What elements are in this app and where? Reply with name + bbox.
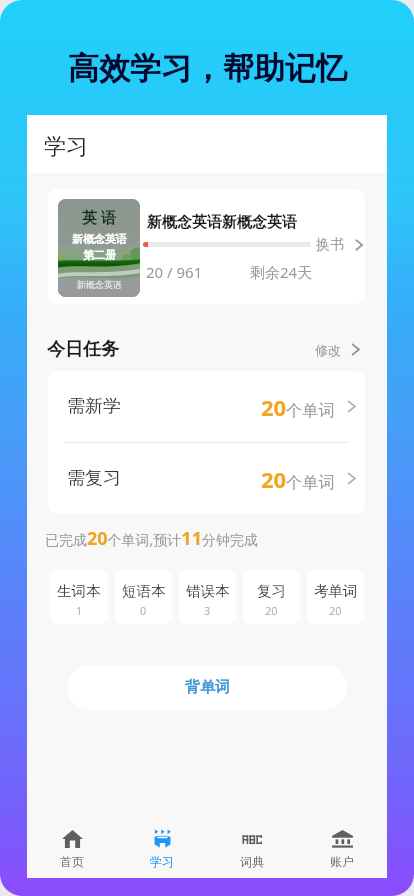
button[interactable]: 修改 <box>315 341 364 358</box>
staticText: 新概念英语 <box>77 279 122 290</box>
staticText: 20个单词 <box>261 464 335 494</box>
staticText: 词典 <box>240 854 264 869</box>
staticText: 20个单词 <box>261 392 335 422</box>
staticText: 考单词 <box>314 582 358 600</box>
button[interactable]: 英 语 <box>48 189 365 304</box>
staticText: 学习 <box>44 133 88 161</box>
button[interactable]: 首页 Home <box>27 810 117 878</box>
staticText: 第二册 <box>83 248 116 262</box>
staticText: 换书 <box>316 236 344 254</box>
button[interactable]: 学习 Study <box>117 810 207 878</box>
staticText: 需新学 <box>67 395 121 418</box>
button[interactable]: 复习 <box>243 569 300 624</box>
staticText: 英 语 <box>82 207 116 227</box>
staticText: 20 <box>329 603 342 618</box>
staticText: 新概念英语 <box>72 232 127 246</box>
button[interactable]: 需复习 <box>48 443 365 514</box>
staticText: 生词本 <box>57 582 101 600</box>
staticText: 复习 <box>257 582 286 600</box>
button[interactable]: 换书 <box>316 236 365 254</box>
staticText: 20 <box>265 603 278 618</box>
staticText: 首页 <box>60 854 84 869</box>
staticText: 20 / 961 <box>146 262 203 282</box>
staticText: 学习 <box>150 854 174 869</box>
staticText: 今日任务 <box>47 338 119 361</box>
staticText: 错误本 <box>186 582 230 600</box>
staticText: 剩余24天 <box>250 262 313 282</box>
staticText: 背单词 <box>185 678 230 697</box>
button[interactable]: 需新学 <box>48 371 365 442</box>
staticText: 已完成20个单词,预计11分钟完成 <box>45 526 258 551</box>
button[interactable]: 账户 Account <box>297 810 387 878</box>
staticText: 账户 <box>330 854 354 869</box>
staticText: 0 <box>140 603 147 618</box>
button[interactable]: 生词本 <box>50 569 108 624</box>
staticText: 高效学习，帮助记忆 <box>68 49 347 88</box>
button[interactable]: 背单词 <box>67 665 347 710</box>
staticText: 新概念英语新概念英语 <box>147 213 297 232</box>
button[interactable]: 错误本 <box>179 569 236 624</box>
staticText: 修改 <box>315 342 341 358</box>
button[interactable]: 词典 Dictionary <box>207 810 297 878</box>
staticText: 需复习 <box>67 467 121 490</box>
staticText: 3 <box>204 603 211 618</box>
button[interactable]: 短语本 <box>115 569 172 624</box>
button[interactable]: 考单词 <box>307 569 364 624</box>
staticText: 短语本 <box>122 582 166 600</box>
staticText: 1 <box>76 603 83 618</box>
